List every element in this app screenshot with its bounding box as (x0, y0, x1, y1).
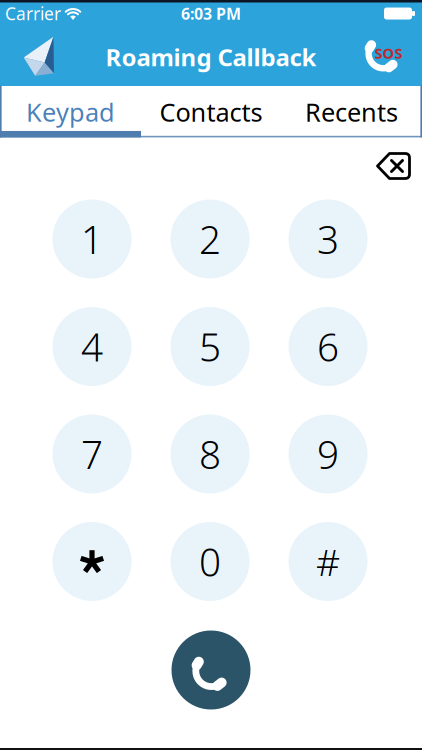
button[interactable]: 5 (170, 307, 249, 386)
staticText: 3 (317, 213, 339, 265)
staticText: Roaming Callback (105, 41, 316, 73)
button[interactable]: 6 (288, 307, 367, 386)
button[interactable]: 8 (170, 414, 249, 493)
button[interactable]: Recents (281, 89, 421, 134)
button[interactable]: 1 (52, 199, 131, 278)
staticText: 1 (81, 213, 103, 265)
button[interactable]: 2 (170, 199, 249, 278)
staticText: 9 (317, 428, 339, 480)
button[interactable]: 7 (52, 414, 131, 493)
staticText: Keypad (26, 95, 115, 129)
button[interactable]: Contacts (141, 89, 281, 134)
staticText: Contacts (159, 95, 262, 129)
staticText: 6 (317, 321, 339, 372)
staticText: Recents (305, 95, 398, 129)
button[interactable]: Keypad (0, 89, 140, 134)
staticText: 7 (81, 428, 103, 480)
button[interactable]: # (288, 522, 367, 601)
button[interactable]: 3 (288, 199, 367, 278)
staticText: 4 (81, 321, 103, 372)
staticText: 8 (199, 428, 221, 480)
button[interactable]: Delete (371, 146, 417, 186)
button[interactable]: * (52, 522, 131, 601)
button[interactable]: Send (16, 32, 60, 82)
staticText: # (316, 537, 340, 586)
button[interactable]: Call (171, 630, 250, 709)
staticText: 5 (199, 321, 221, 372)
button[interactable]: SOS call (361, 27, 415, 83)
button[interactable]: 9 (288, 414, 367, 493)
staticText: 0 (199, 536, 221, 587)
button[interactable]: 0 (170, 522, 249, 601)
staticText: 2 (199, 213, 221, 265)
staticText: Carrier (5, 2, 61, 25)
button[interactable]: 4 (52, 307, 131, 386)
staticText: 6:03 PM (181, 3, 241, 24)
staticText: SOS (374, 43, 402, 63)
